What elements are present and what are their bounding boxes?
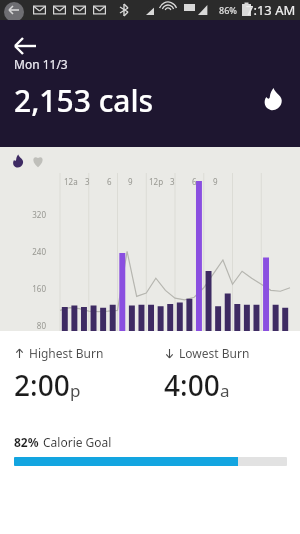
staticText: 9: [128, 176, 133, 187]
staticText: 86%: [219, 4, 237, 16]
staticText: Lowest Burn: [179, 345, 250, 361]
button[interactable]: Back: [10, 26, 50, 66]
staticText: p: [70, 379, 81, 402]
staticText: 6: [192, 176, 197, 187]
staticText: 2:00: [14, 366, 70, 404]
staticText: 6: [107, 176, 112, 187]
staticText: 80: [0, 320, 46, 331]
button[interactable]: Lowest Burn: [150, 331, 300, 426]
staticText: a: [220, 379, 230, 402]
staticText: 12p: [149, 176, 164, 187]
button[interactable]: Highest Burn: [0, 331, 150, 426]
button[interactable]: Heart rate tab: [31, 154, 45, 168]
staticText: 12a: [64, 176, 78, 187]
button[interactable]: Calories tab: [11, 154, 25, 168]
button[interactable]: 82%: [0, 426, 300, 478]
staticText: 3: [85, 176, 90, 187]
staticText: Mon 11/3: [14, 56, 68, 72]
staticText: 9: [213, 176, 218, 187]
staticText: 4:00: [164, 366, 220, 404]
staticText: 7:13 AM: [246, 1, 296, 19]
staticText: 2,153 cals: [14, 80, 154, 121]
staticText: 160: [0, 283, 46, 294]
staticText: 320: [0, 209, 46, 220]
button[interactable]: Calories: [256, 82, 290, 116]
staticText: Highest Burn: [29, 345, 104, 361]
staticText: 240: [0, 246, 46, 257]
staticText: 82%: [14, 434, 39, 450]
staticText: Calorie Goal: [43, 434, 112, 450]
staticText: 3: [170, 176, 175, 187]
